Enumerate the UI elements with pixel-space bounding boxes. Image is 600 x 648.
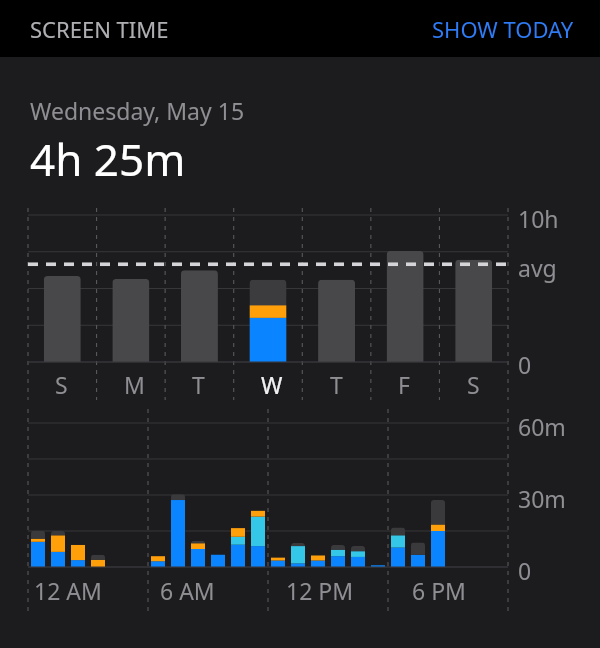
staticText: T	[330, 369, 343, 400]
staticText: 10h	[518, 203, 559, 234]
staticText: 4h 25m	[30, 129, 186, 189]
button[interactable]: 12 AM	[0, 397, 600, 616]
staticText: 12 PM	[286, 575, 354, 606]
staticText: 60m	[518, 411, 566, 442]
staticText: M	[124, 369, 145, 400]
staticText: SHOW TODAY	[432, 14, 574, 44]
staticText: 0	[518, 349, 532, 380]
button[interactable]: Show today	[406, 4, 600, 54]
staticText: 30m	[518, 483, 566, 514]
staticText: 6 PM	[412, 575, 466, 606]
staticText: Wednesday, May 15	[30, 95, 245, 126]
staticText: W	[261, 369, 283, 400]
staticText: avg	[518, 252, 557, 283]
staticText: T	[192, 369, 205, 400]
staticText: S	[55, 369, 68, 400]
staticText: 0	[518, 555, 532, 586]
staticText: 6 AM	[160, 575, 215, 606]
staticText: SCREEN TIME	[30, 14, 169, 44]
staticText: 12 AM	[34, 575, 102, 606]
staticText: F	[398, 369, 410, 400]
button[interactable]: S	[0, 201, 600, 397]
staticText: S	[467, 369, 480, 400]
